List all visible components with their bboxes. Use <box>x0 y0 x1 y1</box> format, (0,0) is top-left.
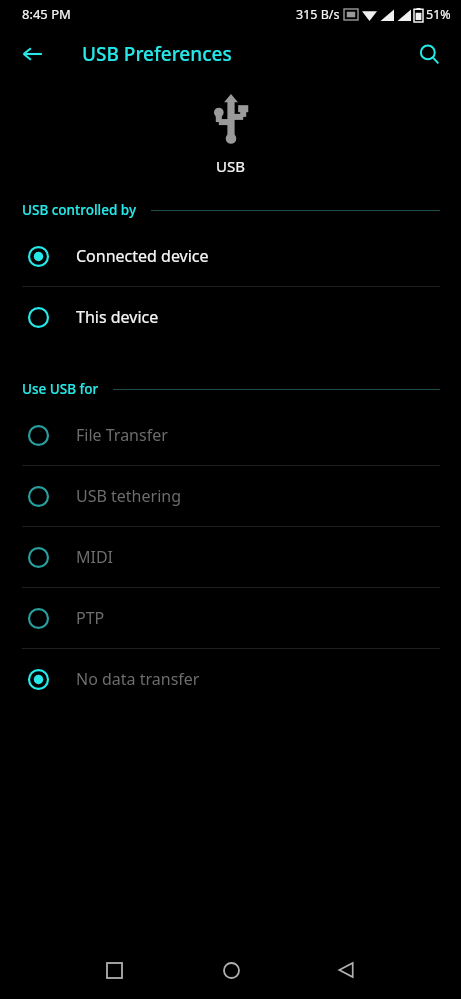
button[interactable]: Home <box>209 948 253 992</box>
button[interactable]: File Transfer <box>0 405 461 465</box>
staticText: Use USB for <box>22 380 99 398</box>
button[interactable]: Recents <box>92 948 136 992</box>
staticText: USB Preferences <box>82 41 232 67</box>
button[interactable]: No data transfer <box>0 649 461 709</box>
button[interactable]: Search <box>409 34 449 74</box>
staticText: USB tethering <box>76 485 181 507</box>
staticText: USB <box>216 156 245 176</box>
staticText: PTP <box>76 607 105 629</box>
staticText: This device <box>76 306 159 328</box>
button[interactable]: PTP <box>0 588 461 648</box>
button[interactable]: Connected device <box>0 226 461 286</box>
staticText: File Transfer <box>76 424 168 446</box>
staticText: Connected device <box>76 245 209 267</box>
staticText: 315 B/s <box>296 6 340 23</box>
staticText: No data transfer <box>76 668 200 690</box>
button[interactable]: Back <box>12 34 52 74</box>
button[interactable]: MIDI <box>0 527 461 587</box>
staticText: USB controlled by <box>22 201 137 219</box>
staticText: 8:45 PM <box>22 5 71 23</box>
button[interactable]: USB tethering <box>0 466 461 526</box>
staticText: 51% <box>426 6 451 23</box>
staticText: MIDI <box>76 546 114 568</box>
button[interactable]: This device <box>0 287 461 347</box>
button[interactable]: Back <box>324 948 368 992</box>
